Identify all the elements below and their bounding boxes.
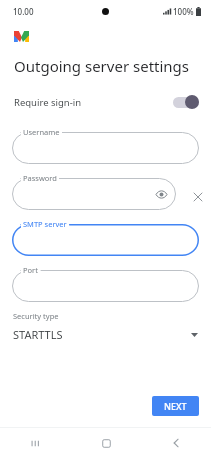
button[interactable]: Recent apps <box>0 428 71 458</box>
button[interactable]: NEXT <box>152 396 199 416</box>
other: Require sign-in toggle <box>173 95 199 109</box>
staticText: Outgoing server settings <box>14 56 190 76</box>
button[interactable]: Security type <box>0 311 211 342</box>
staticText: Password <box>23 173 57 183</box>
staticText: 100% <box>173 6 194 17</box>
staticText: Username <box>23 127 60 137</box>
other: Open security type menu <box>191 333 198 337</box>
staticText: 10.00 <box>13 6 34 17</box>
staticText: Security type <box>13 311 59 321</box>
button[interactable] <box>12 224 199 256</box>
button[interactable] <box>12 270 199 302</box>
button[interactable]: Back <box>141 428 211 458</box>
button[interactable]: Home <box>71 428 141 458</box>
staticText: STARTTLS <box>13 327 63 342</box>
staticText: SMTP server <box>23 219 67 229</box>
button[interactable]: Require sign-in <box>0 89 211 115</box>
button[interactable]: Show password <box>154 187 169 202</box>
staticText: NEXT <box>164 400 187 412</box>
staticText: Port <box>23 265 38 275</box>
button[interactable]: Clear password <box>190 189 206 205</box>
button[interactable] <box>12 132 199 164</box>
staticText: Require sign-in <box>14 96 82 109</box>
button[interactable]: Show password <box>12 178 176 210</box>
